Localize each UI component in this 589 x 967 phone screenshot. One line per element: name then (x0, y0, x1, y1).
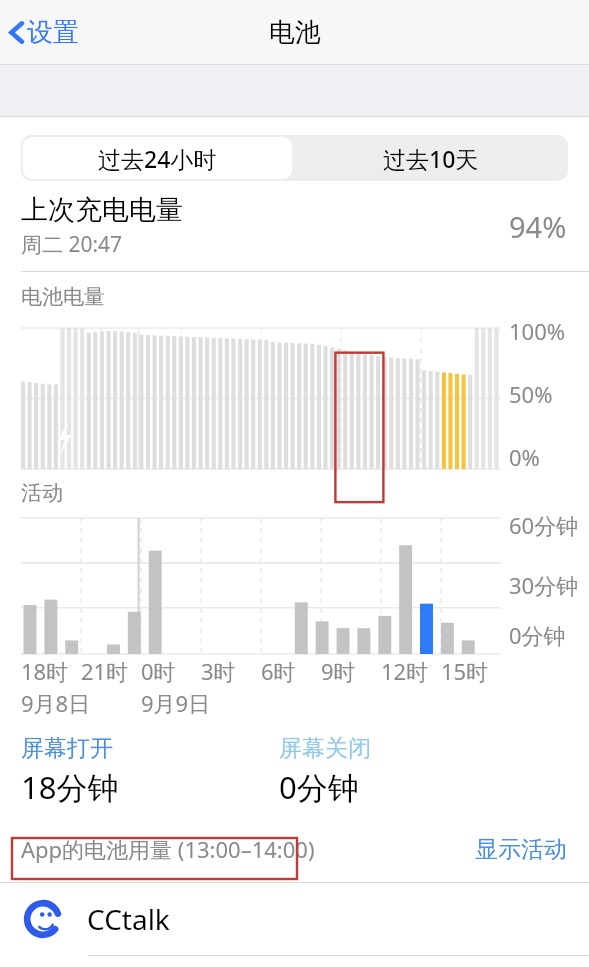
staticText: 屏幕打开 (21, 734, 113, 763)
staticText: 显示活动 (475, 835, 567, 864)
staticText: 18分钟 (21, 766, 119, 808)
staticText: 21时 (81, 656, 129, 686)
staticText: 活动 (21, 480, 63, 506)
staticText: 过去10天 (383, 143, 479, 174)
staticText: 50% (509, 379, 553, 409)
button[interactable]: 过去24小时 (23, 137, 292, 179)
staticText: 15时 (441, 656, 489, 686)
button[interactable]: 显示活动 (475, 835, 567, 864)
staticText: 0分钟 (509, 620, 566, 650)
staticText: 100% (509, 316, 566, 346)
staticText: 9时 (321, 656, 356, 686)
staticText: 电池 (269, 16, 321, 49)
button[interactable]: CCtalk (0, 883, 589, 955)
staticText: 12时 (381, 656, 429, 686)
staticText: 周二 20:47 (21, 230, 123, 259)
staticText: 18时 (21, 656, 69, 686)
staticText: CCtalk (87, 900, 170, 938)
staticText: 9月8日 (21, 688, 91, 718)
staticText: 过去24小时 (98, 143, 217, 174)
button[interactable]: 上次充电电量 (0, 193, 589, 259)
button[interactable]: 设置 (0, 8, 95, 57)
staticText: 94% (509, 207, 567, 246)
staticText: 60分钟 (509, 510, 579, 540)
staticText: 9月9日 (141, 688, 211, 718)
staticText: 0% (509, 442, 540, 472)
staticText: 屏幕关闭 (279, 734, 371, 763)
staticText: 0分钟 (279, 766, 359, 808)
staticText: 设置 (27, 16, 79, 49)
staticText: 30分钟 (509, 570, 579, 600)
button[interactable]: 过去10天 (294, 135, 568, 181)
staticText: 6时 (261, 656, 296, 686)
staticText: 3时 (201, 656, 236, 686)
staticText: 0时 (141, 656, 176, 686)
staticText: 电池电量 (21, 284, 105, 310)
staticText: App的电池用量 (13:00–14:00) (21, 834, 315, 864)
staticText: 上次充电电量 (21, 193, 183, 227)
